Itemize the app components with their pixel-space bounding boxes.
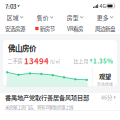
staticText: 46分: [101, 93, 112, 101]
button[interactable]: 更多: [90, 12, 120, 23]
button[interactable]: 周边新盘: [90, 23, 120, 34]
button[interactable]: 新房节: [30, 23, 60, 34]
staticText: 更多: [97, 13, 109, 22]
button[interactable]: 安选房源: [0, 23, 30, 34]
staticText: 观望: [99, 72, 111, 80]
staticText: VR看房: [67, 24, 83, 32]
staticText: 新房节: [40, 24, 55, 32]
staticText: 1.35%: [93, 56, 113, 65]
staticText: 4G: [99, 2, 105, 9]
staticText: 佛山房价: [8, 43, 36, 53]
button[interactable]: 番禺地产党取行善居备风项目部: [0, 93, 120, 110]
staticText: 安选房源: [5, 24, 25, 32]
staticText: 市场情绪: [97, 81, 113, 87]
button[interactable]: 房型: [60, 12, 90, 23]
staticText: 比上月: [74, 57, 89, 64]
staticText: 周边新盘: [95, 24, 115, 32]
staticText: 13494: [24, 55, 49, 67]
button[interactable]: VR看房: [60, 23, 90, 34]
staticText: 房型: [67, 13, 79, 22]
staticText: 区域: [7, 13, 19, 22]
staticText: 番禺地产党取行善居备风项目部: [5, 93, 89, 102]
button[interactable]: 售价: [30, 12, 60, 23]
staticText: 元/㎡: [49, 58, 59, 64]
staticText: 7:03: [5, 2, 16, 10]
staticText: 售价: [37, 13, 49, 22]
staticText: 米房屋工房门店、将有19家新房源上线: [5, 104, 73, 110]
button[interactable]: 区域: [0, 12, 30, 23]
staticText: 二手房: [7, 57, 22, 64]
